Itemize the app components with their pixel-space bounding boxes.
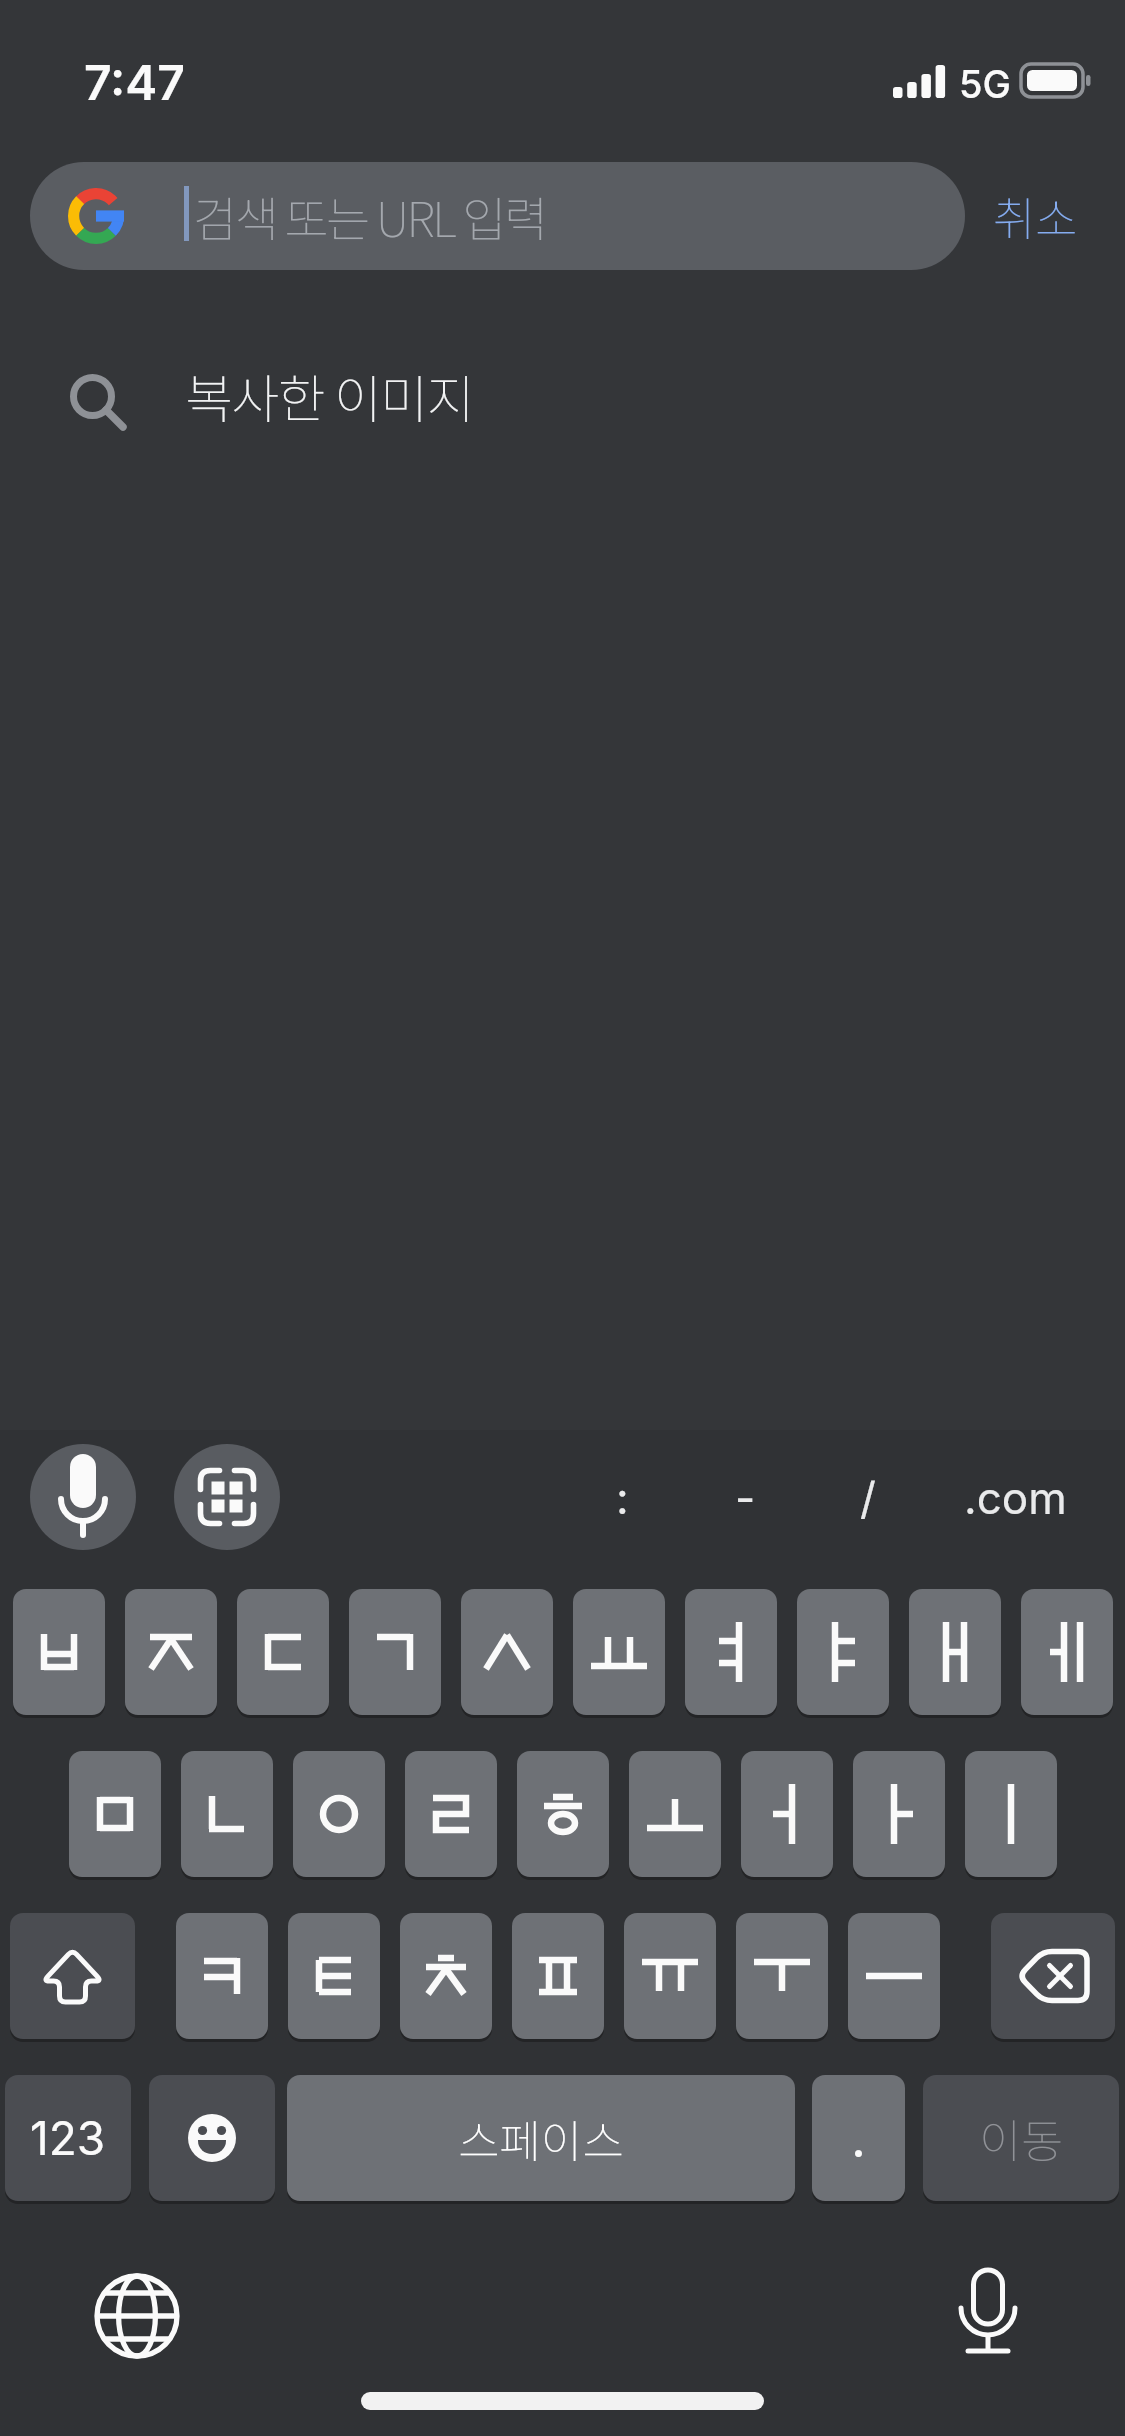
button[interactable] xyxy=(512,1913,604,2039)
button[interactable] xyxy=(125,1589,217,1715)
button[interactable] xyxy=(176,1913,268,2039)
button[interactable] xyxy=(938,2255,1038,2365)
button[interactable] xyxy=(69,1751,161,1877)
button[interactable] xyxy=(797,1589,889,1715)
button[interactable] xyxy=(848,1913,940,2039)
button[interactable] xyxy=(13,1589,105,1715)
button[interactable] xyxy=(517,1751,609,1877)
staticText: .com xyxy=(964,1471,1067,1524)
button[interactable] xyxy=(405,1751,497,1877)
button[interactable] xyxy=(181,1751,273,1877)
button[interactable] xyxy=(965,1751,1057,1877)
button[interactable] xyxy=(30,1444,136,1550)
button[interactable] xyxy=(288,1913,380,2039)
button[interactable]: 스페이스 xyxy=(287,2075,795,2201)
button[interactable]: 123 xyxy=(5,2075,131,2201)
button[interactable] xyxy=(736,1913,828,2039)
staticText: 7:47 xyxy=(84,53,185,111)
button[interactable] xyxy=(237,1589,329,1715)
button[interactable]: - xyxy=(703,1444,787,1550)
button[interactable] xyxy=(349,1589,441,1715)
staticText: - xyxy=(735,1471,756,1524)
button[interactable] xyxy=(461,1589,553,1715)
staticText: 스페이스 xyxy=(458,2106,624,2171)
button[interactable] xyxy=(149,2075,275,2201)
button[interactable]: 검색 또는 URL 입력 xyxy=(30,162,965,270)
button[interactable]: : xyxy=(580,1444,664,1550)
button[interactable] xyxy=(10,1913,135,2039)
button[interactable] xyxy=(573,1589,665,1715)
staticText: 이동 xyxy=(979,2105,1064,2172)
staticText: 취소 xyxy=(993,183,1078,250)
button[interactable]: .com xyxy=(940,1444,1090,1550)
staticText: . xyxy=(851,2107,866,2170)
button[interactable]: 취소 xyxy=(975,162,1095,270)
button[interactable] xyxy=(400,1913,492,2039)
button[interactable] xyxy=(741,1751,833,1877)
button[interactable] xyxy=(909,1589,1001,1715)
button[interactable]: 복사한 이미지 xyxy=(0,330,1125,460)
button[interactable] xyxy=(685,1589,777,1715)
button[interactable] xyxy=(624,1913,716,2039)
staticText: / xyxy=(860,1471,876,1524)
staticText: 5G xyxy=(959,61,1011,107)
button[interactable] xyxy=(1021,1589,1113,1715)
button[interactable] xyxy=(853,1751,945,1877)
button[interactable] xyxy=(174,1444,280,1550)
staticText: 복사한 이미지 xyxy=(185,358,473,433)
button[interactable] xyxy=(991,1913,1115,2039)
button[interactable]: / xyxy=(826,1444,910,1550)
button[interactable] xyxy=(87,2263,187,2363)
staticText: : xyxy=(616,1471,629,1524)
button[interactable]: 이동 xyxy=(923,2075,1119,2201)
button[interactable]: . xyxy=(812,2075,905,2201)
staticText: 123 xyxy=(30,2110,106,2166)
staticText: 검색 또는 URL 입력 xyxy=(193,181,546,251)
button[interactable] xyxy=(629,1751,721,1877)
button[interactable] xyxy=(293,1751,385,1877)
